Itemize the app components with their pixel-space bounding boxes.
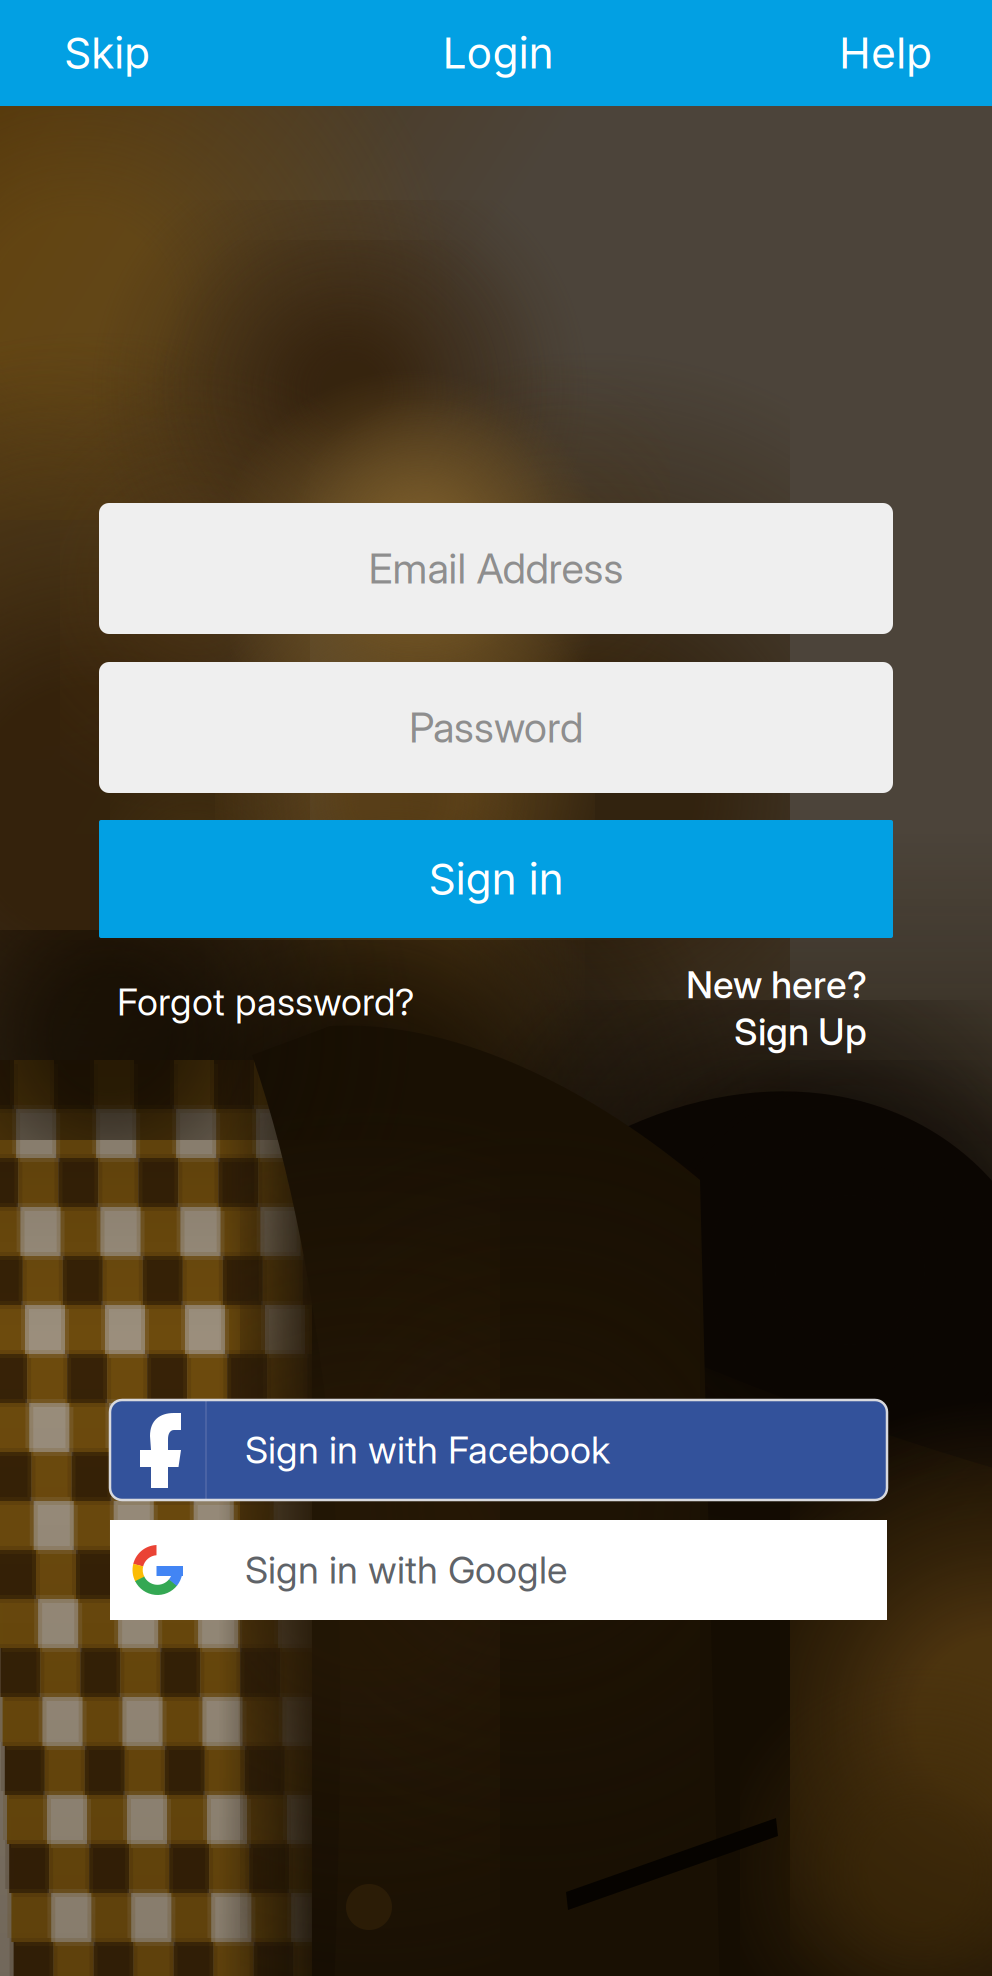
button[interactable]: Sign in with Google: [110, 1520, 887, 1620]
staticText: Password: [409, 702, 583, 752]
staticText: Skip: [64, 27, 150, 79]
button[interactable]: New here?: [607, 952, 893, 1062]
staticText: Help: [839, 27, 932, 79]
button[interactable]: Sign in: [99, 820, 893, 938]
staticText: Forgot password?: [117, 979, 414, 1025]
button[interactable]: Skip: [0, 0, 264, 106]
staticText: Sign in: [428, 853, 563, 905]
button[interactable]: Forgot password?: [99, 952, 517, 1052]
staticText: Sign in with Facebook: [245, 1427, 610, 1473]
button[interactable]: Sign in with Facebook: [110, 1400, 887, 1500]
staticText: Sign Up: [734, 1009, 867, 1054]
staticText: Login: [442, 27, 553, 79]
staticText: Email Address: [368, 543, 623, 593]
button[interactable]: Help: [732, 0, 992, 106]
staticText: New here?: [686, 962, 867, 1007]
staticText: Sign in with Google: [245, 1547, 567, 1593]
